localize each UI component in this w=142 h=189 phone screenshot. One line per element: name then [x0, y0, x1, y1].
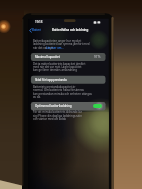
staticText: sig iPhone din dagliga laddningsrutin: [33, 114, 83, 118]
button[interactable]: Optimerad batteriladdning: [93, 104, 102, 108]
staticText: Läs mer om…: [46, 46, 64, 50]
button[interactable]: Optimerad batteriladdning: [31, 102, 106, 111]
staticText: med när det var nytt. Lägre kapacitet: [33, 65, 82, 69]
button[interactable]: Stöd för toppprestanda: [31, 76, 106, 84]
staticText: Optimerad batteriladdning: [35, 104, 72, 108]
staticText: kan ge färre timmars användning: [33, 68, 78, 72]
staticText: när det var nytt.: [33, 46, 55, 50]
staticText: Maximal kapacitet: [35, 55, 60, 59]
staticText: av då.: [33, 95, 41, 99]
staticText: Batterihälsa och laddning: [52, 28, 89, 32]
staticText: 97 %: [94, 55, 101, 59]
staticText: Stöd för toppprestanda: [35, 78, 67, 82]
button[interactable]: Maximal kapacitet: [31, 53, 106, 61]
staticText: och väntar med att ladda: [33, 117, 66, 121]
staticText: 19:18: [35, 20, 43, 24]
button[interactable]: Batteri: [29, 28, 42, 33]
staticText: laddning batteriet kan rymma jämfört med: [33, 42, 90, 46]
staticText: kan prestandan minska och enheten stänga…: [33, 92, 92, 96]
staticText: Batterikapaciteten anger hur mycket: [33, 39, 82, 43]
staticText: Batteriets prestandakapacitet är: [33, 85, 76, 89]
staticText: Detta mäter batteriets kapacitet jämfört: [33, 62, 86, 66]
staticText: normal. Om batteriets hälsa försämras: [33, 88, 84, 92]
staticText: Batteri: [32, 28, 42, 32]
staticText: För att minska batteriets åldrande lär: [33, 110, 82, 114]
